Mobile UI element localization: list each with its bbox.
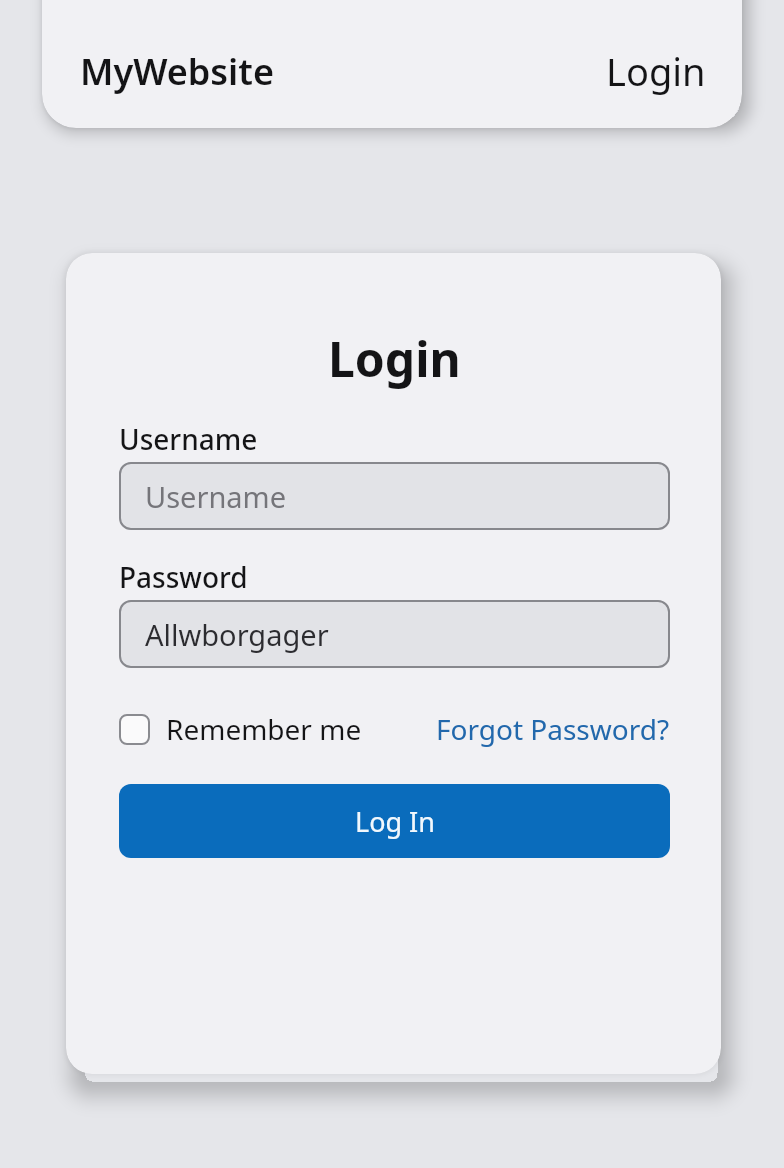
staticText: Forgot Password? — [436, 710, 670, 748]
button[interactable]: Remember me — [119, 710, 362, 748]
button[interactable]: Login — [606, 45, 706, 97]
staticText: Username — [119, 420, 258, 458]
staticText: Log In — [355, 803, 435, 840]
staticText: Login — [328, 326, 461, 391]
staticText: Password — [119, 558, 248, 596]
staticText: Login — [606, 45, 706, 97]
staticText: Username — [145, 477, 287, 516]
staticText: Allwborgager — [145, 615, 329, 654]
staticText: MyWebsite — [80, 47, 274, 96]
staticText: Remember me — [166, 710, 362, 748]
button[interactable]: Forgot Password? — [436, 710, 670, 748]
button[interactable]: Log In — [119, 784, 670, 858]
button[interactable]: Allwborgager — [119, 600, 670, 668]
button[interactable]: Username — [119, 462, 670, 530]
